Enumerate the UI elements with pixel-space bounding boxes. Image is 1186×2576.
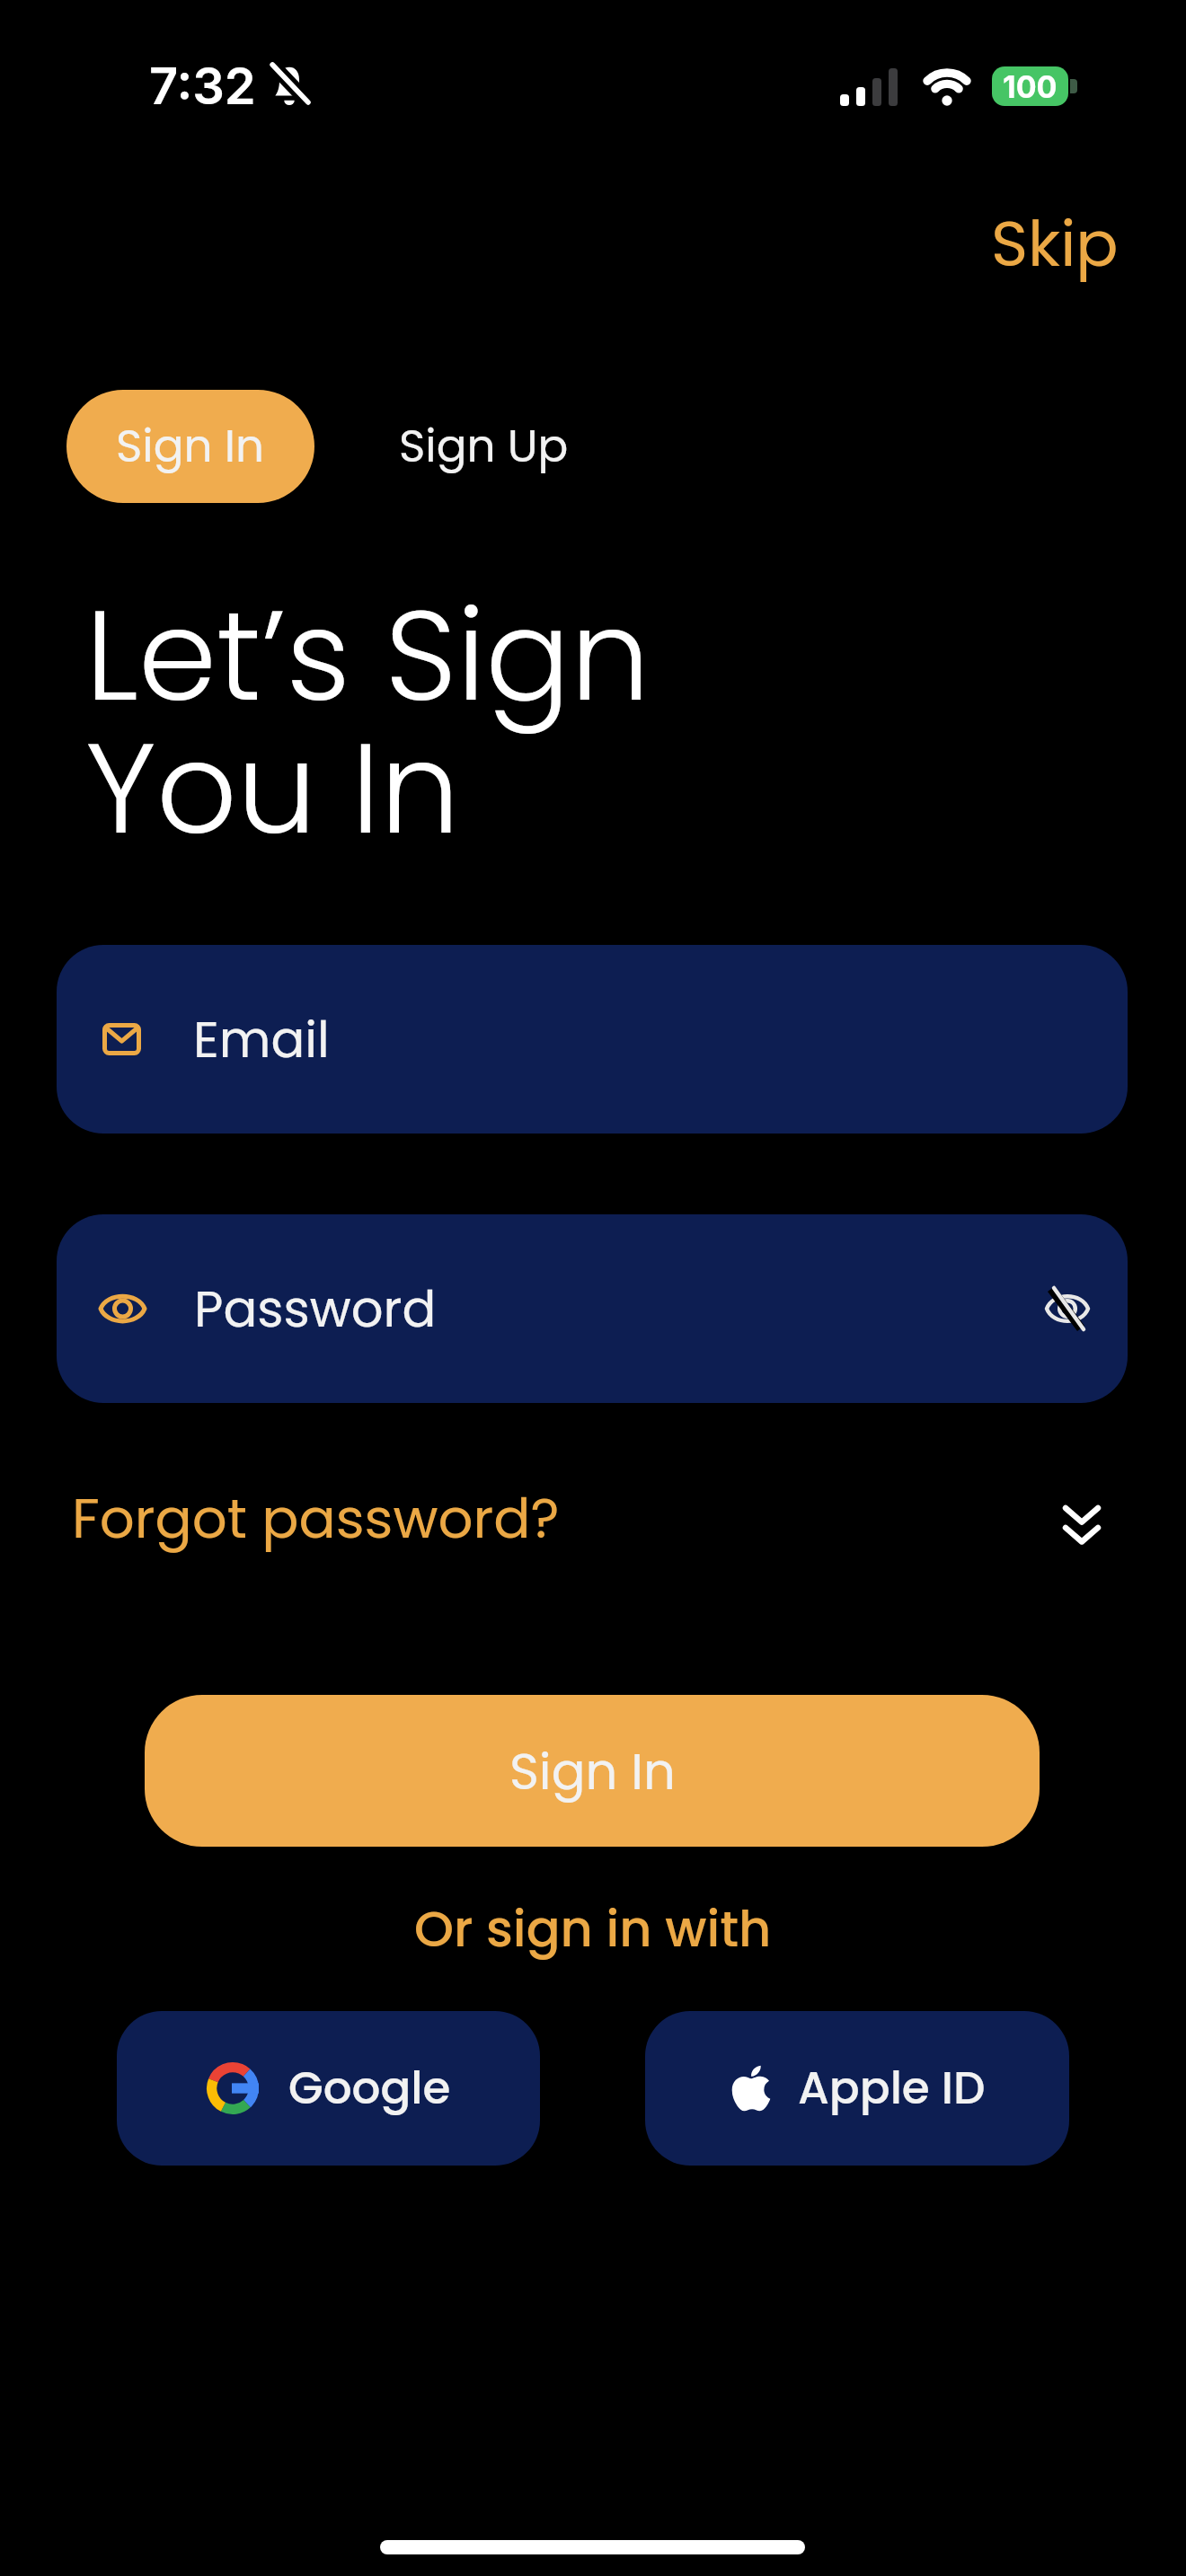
- button[interactable]: [1045, 1289, 1090, 1328]
- button[interactable]: Password: [57, 1214, 1128, 1403]
- button[interactable]: Sign In: [66, 390, 314, 503]
- staticText: Google: [288, 2057, 451, 2120]
- button[interactable]: Google: [117, 2011, 540, 2166]
- staticText: 7:32: [149, 56, 256, 117]
- staticText: 100: [1003, 68, 1058, 105]
- staticText: Apple ID: [798, 2057, 986, 2120]
- staticText: Sign In: [509, 1736, 676, 1806]
- button[interactable]: Sign In: [145, 1695, 1040, 1847]
- button[interactable]: Forgot password?: [72, 1480, 560, 1557]
- staticText: Skip: [991, 199, 1119, 287]
- button[interactable]: Sign Up: [385, 390, 582, 503]
- staticText: Let’s Sign You In: [85, 568, 651, 877]
- button[interactable]: Skip: [991, 199, 1119, 287]
- staticText: Forgot password?: [72, 1480, 560, 1557]
- staticText: Sign Up: [399, 415, 569, 478]
- staticText: Password: [194, 1274, 437, 1344]
- button[interactable]: Email: [57, 945, 1128, 1134]
- button[interactable]: [1063, 1504, 1101, 1550]
- staticText: Or sign in with: [414, 1893, 772, 1963]
- staticText: Email: [193, 1004, 330, 1074]
- button[interactable]: Apple ID: [645, 2011, 1069, 2166]
- staticText: Sign In: [116, 415, 265, 478]
